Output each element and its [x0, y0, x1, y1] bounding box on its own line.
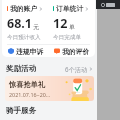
staticText: 我的评价 [62, 47, 90, 56]
staticText: 6个活动 [65, 65, 88, 73]
staticText: 68.1 [7, 15, 32, 32]
button[interactable]: 我的评价 [48, 45, 95, 57]
staticText: 单 [69, 23, 75, 31]
staticText: 元 [33, 23, 39, 31]
staticText: 我的账户 [10, 4, 38, 13]
button[interactable]: 6个活动 [65, 65, 93, 73]
staticText: 订单统计 [56, 4, 84, 13]
staticText: 骑手服务 [6, 106, 36, 115]
staticText: 惊喜抢单礼 [9, 80, 45, 89]
staticText: 违规申诉 [16, 47, 44, 56]
button[interactable]: 我的账户 [2, 3, 48, 42]
staticText: 今日预计收入 [7, 34, 41, 41]
staticText: 今日完成单 [53, 34, 81, 41]
staticText: 2021.07.16~20... [9, 91, 51, 98]
staticText: 奖励活动 [6, 64, 36, 73]
button[interactable]: 违规申诉 [2, 45, 48, 57]
button[interactable]: 订单统计 [48, 3, 95, 42]
button[interactable]: Status [96, 0, 120, 9]
staticText: 12 [53, 15, 68, 32]
button[interactable]: 惊喜抢单礼 [5, 76, 94, 101]
